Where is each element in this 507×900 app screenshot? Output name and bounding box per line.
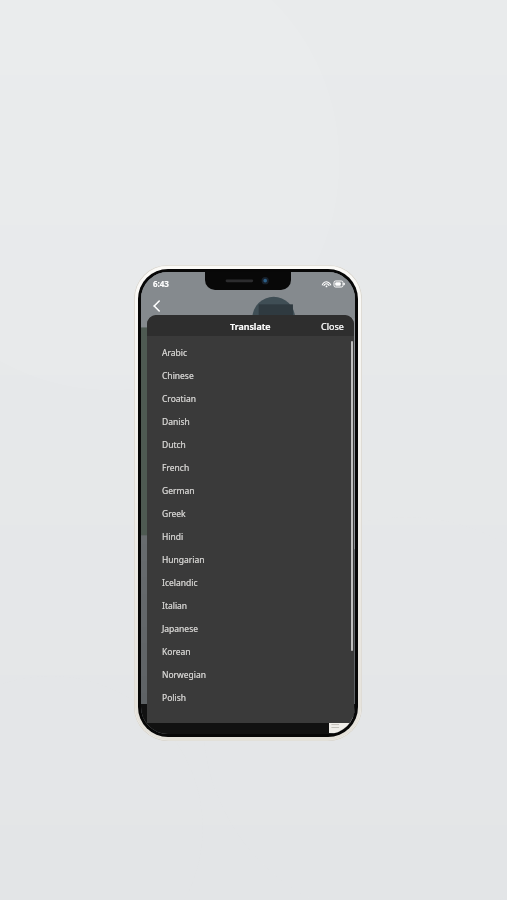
staticText: Danish [162, 416, 190, 428]
button[interactable]: Italian [147, 594, 354, 617]
button[interactable]: French [147, 456, 354, 479]
button[interactable]: Norwegian [147, 663, 354, 686]
button[interactable]: Close [311, 316, 354, 336]
staticText: Croatian [162, 393, 196, 405]
button[interactable]: Text size [285, 705, 305, 725]
button[interactable]: Japanese [147, 617, 354, 640]
staticText: Norwegian [162, 669, 207, 681]
staticText: Polish [162, 692, 186, 704]
staticText: 6:43 [153, 278, 169, 289]
staticText: Hungarian [162, 554, 205, 566]
staticText: Icelandic [162, 577, 198, 589]
staticText: Translate [230, 320, 271, 332]
button[interactable]: Back [147, 296, 167, 316]
staticText: Dutch [162, 439, 186, 451]
button[interactable]: Danish [147, 410, 354, 433]
button[interactable]: Hindi [147, 525, 354, 548]
button[interactable]: Highlight [218, 705, 238, 725]
staticText: German [162, 485, 195, 497]
button[interactable]: Polish [147, 686, 354, 709]
button[interactable]: Dutch [147, 433, 354, 456]
button[interactable]: Bookmark [151, 705, 171, 725]
button[interactable]: Hungarian [147, 548, 354, 571]
button[interactable]: Icelandic [147, 571, 354, 594]
button[interactable]: Korean [147, 640, 354, 663]
button[interactable]: Arabic [147, 341, 354, 364]
staticText: Hindi [162, 531, 184, 543]
staticText: Chinese [162, 370, 194, 382]
button[interactable]: German [147, 479, 354, 502]
button[interactable]: Note [252, 705, 272, 725]
staticText: Italian [162, 600, 188, 612]
staticText: Close [321, 320, 344, 332]
staticText: Arabic [162, 347, 188, 359]
button[interactable]: Chinese [147, 364, 354, 387]
staticText: Japanese [162, 623, 198, 635]
button[interactable]: Page thumbnail [329, 707, 353, 733]
staticText: Korean [162, 646, 191, 658]
staticText: Greek [162, 508, 186, 520]
button[interactable]: Greek [147, 502, 354, 525]
button[interactable]: Croatian [147, 387, 354, 410]
staticText: French [162, 462, 190, 474]
button[interactable]: Pen [185, 705, 205, 725]
